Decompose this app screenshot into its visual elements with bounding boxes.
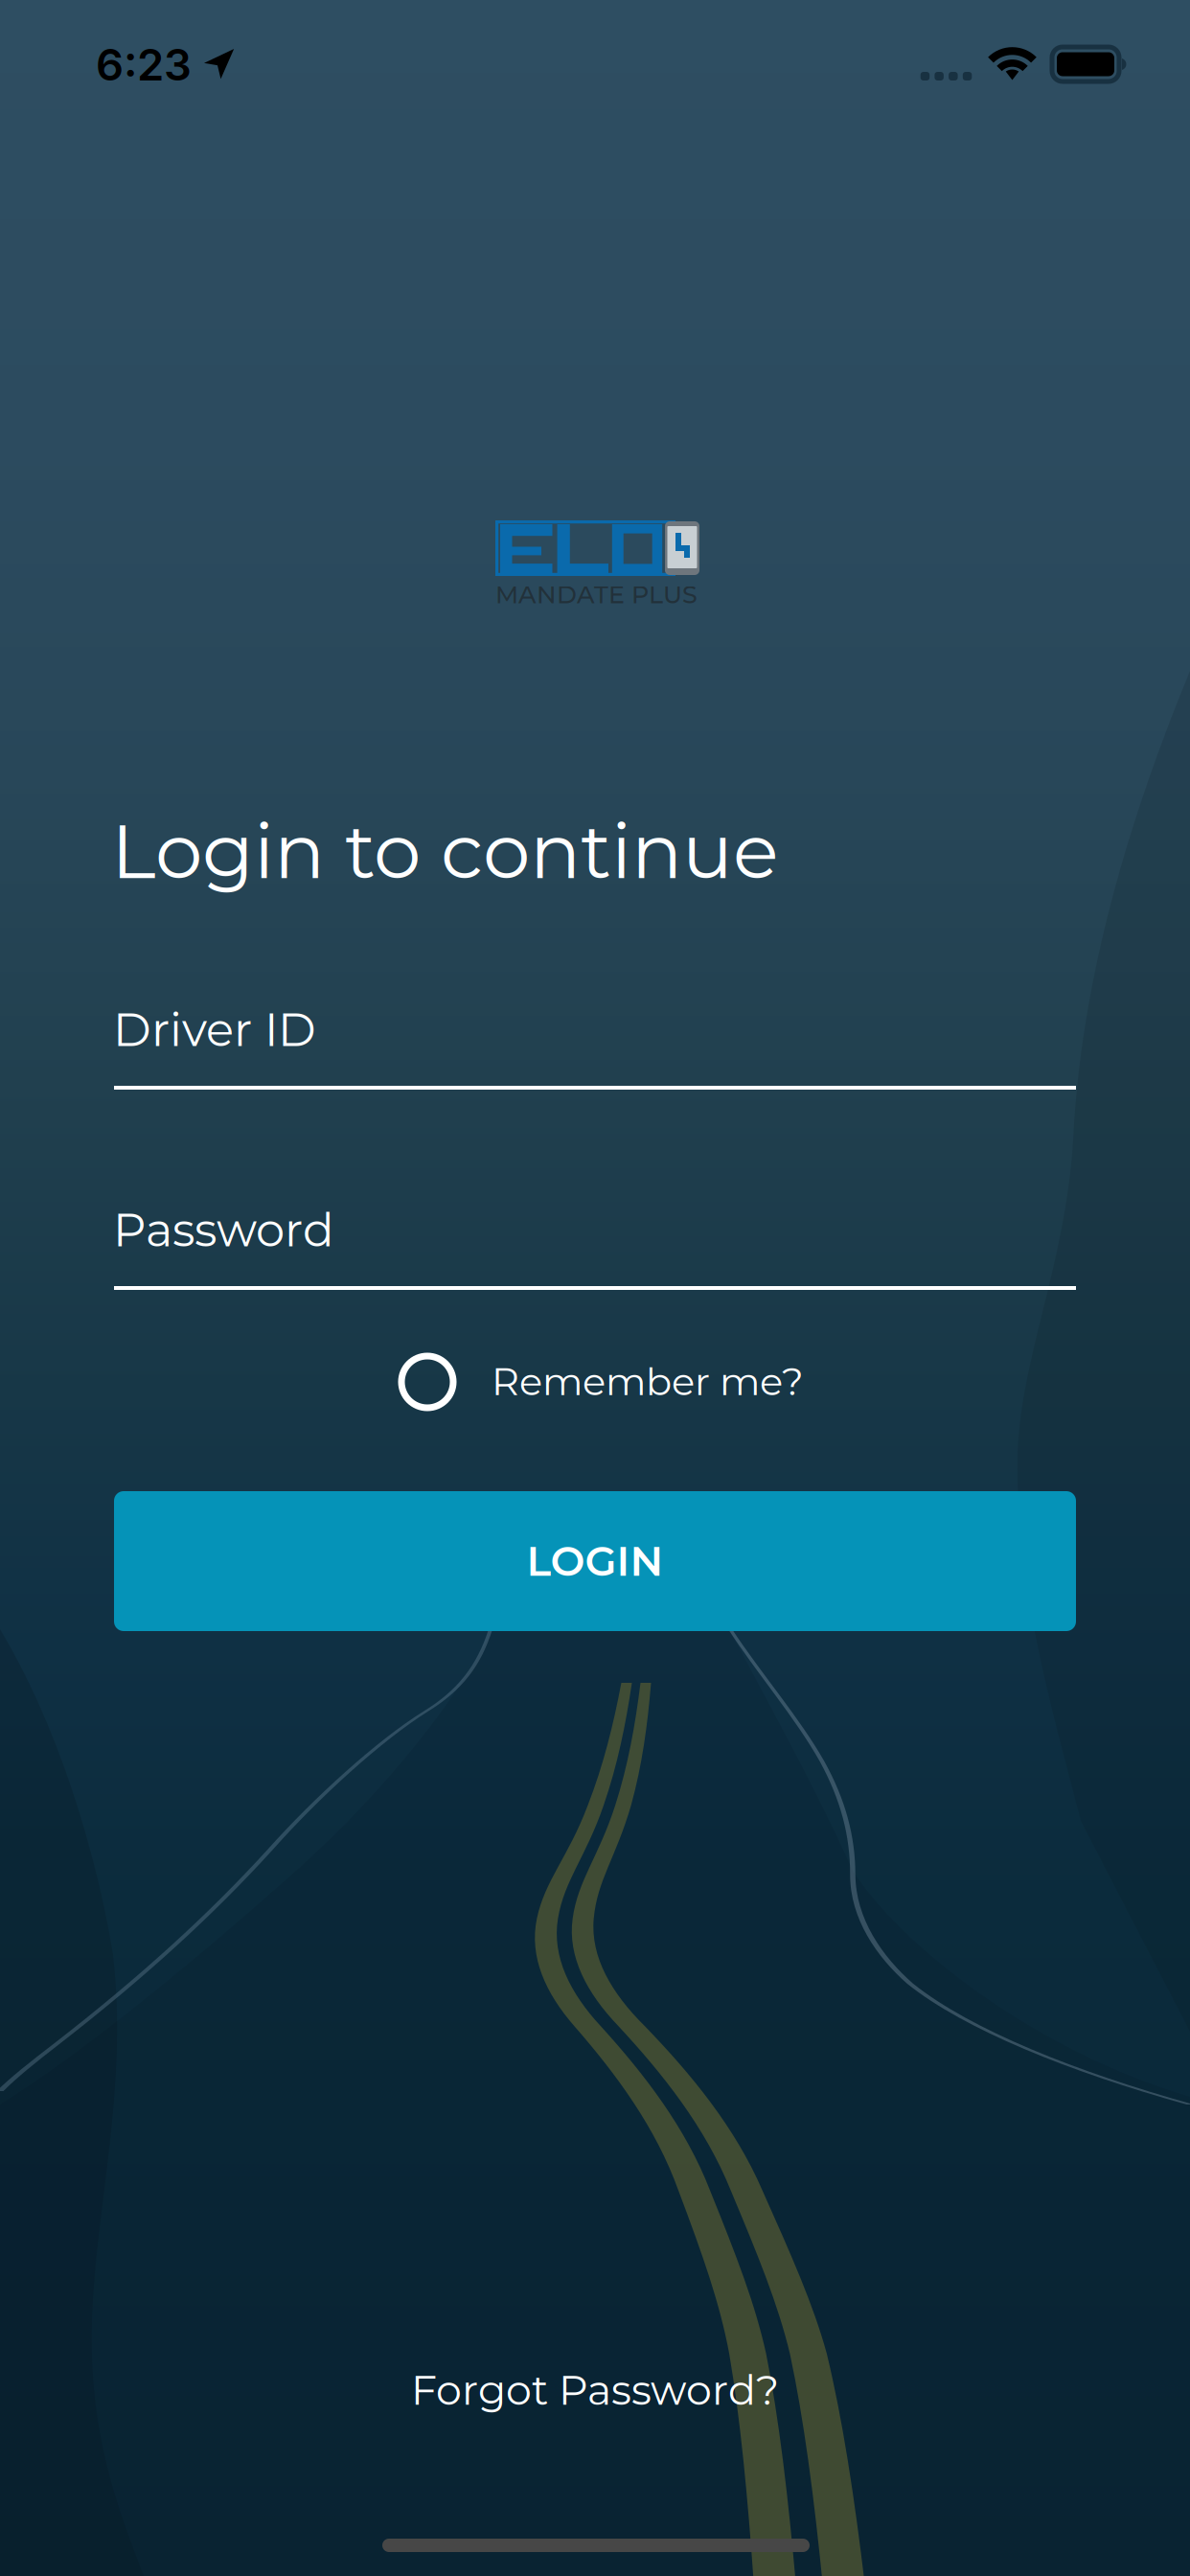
- button[interactable]: LOGIN: [114, 1491, 1076, 1631]
- staticText: Driver ID: [113, 1001, 316, 1058]
- staticText: Forgot Password?: [411, 2365, 779, 2415]
- staticText: MANDATE PLUS: [495, 580, 698, 609]
- button[interactable]: Remember me?: [399, 1336, 811, 1428]
- button[interactable]: Forgot Password?: [394, 2352, 796, 2428]
- staticText: Password: [113, 1202, 334, 1258]
- staticText: Remember me?: [492, 1358, 804, 1405]
- staticText: Login to continue: [111, 805, 779, 897]
- staticText: 6:23: [96, 38, 192, 91]
- button[interactable]: Driver ID: [114, 1001, 1076, 1090]
- staticText: LOGIN: [526, 1536, 664, 1586]
- button[interactable]: Password: [114, 1202, 1076, 1290]
